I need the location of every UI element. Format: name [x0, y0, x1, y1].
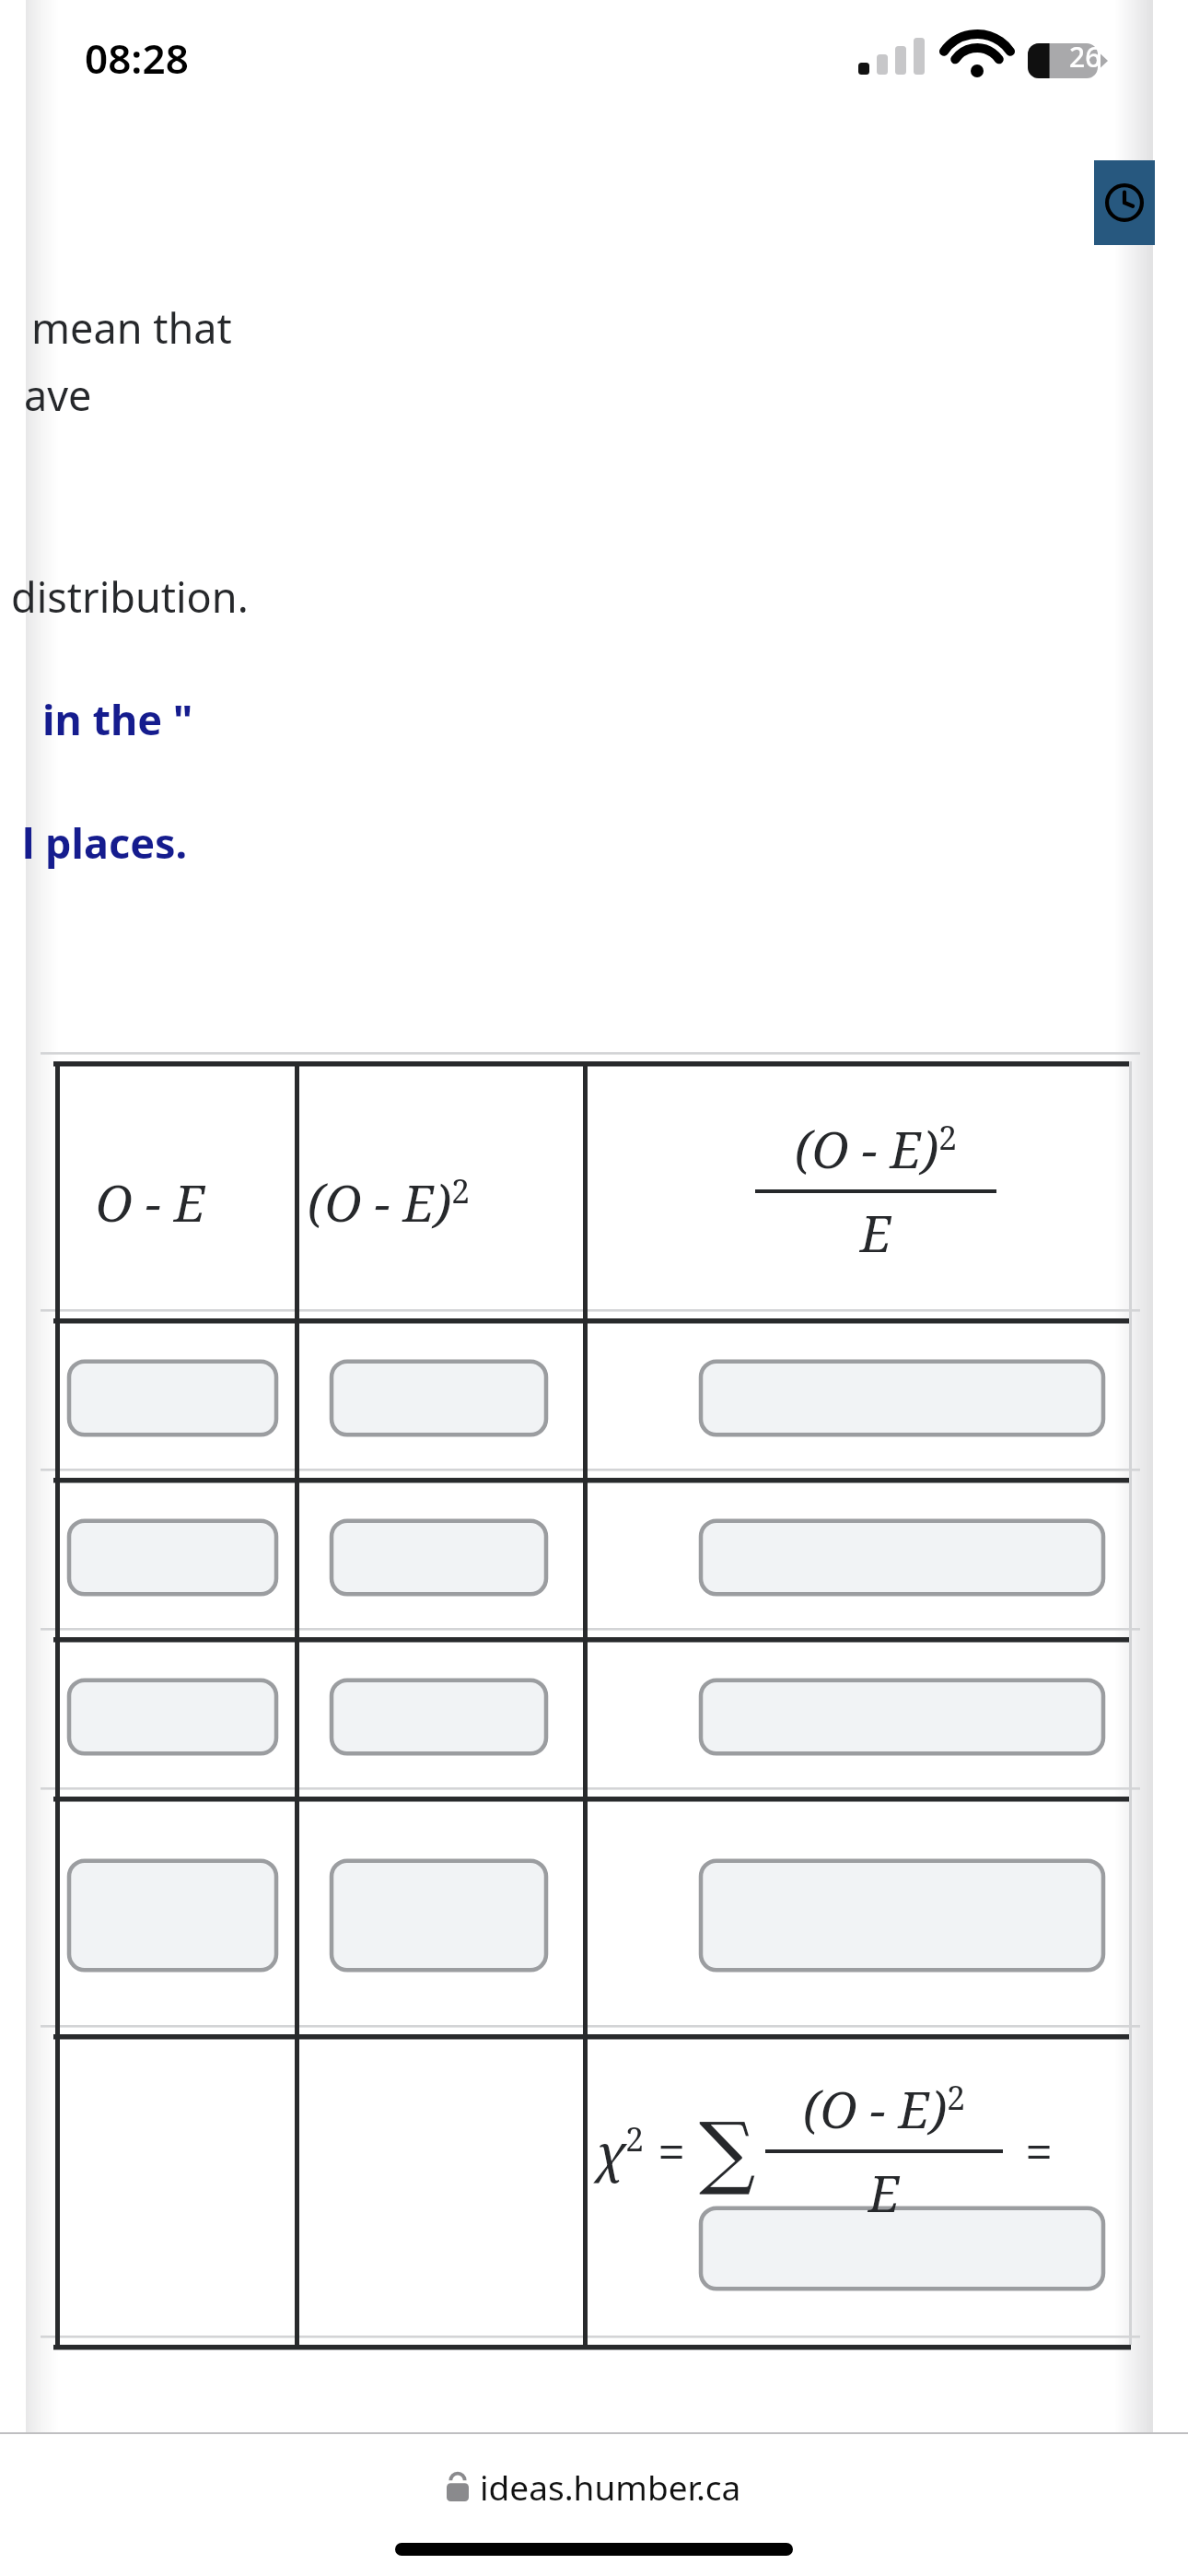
staticText: ideas.humber.ca [480, 2464, 741, 2510]
staticText: E [868, 2159, 900, 2227]
staticText: E [860, 1199, 891, 1267]
staticText: 26 [1069, 38, 1101, 76]
staticText: O − E [96, 1168, 205, 1236]
staticText: χ [597, 2117, 625, 2185]
staticText: = [645, 2117, 699, 2185]
button[interactable]: History [1094, 160, 1155, 245]
staticText: (O − E) [795, 1115, 938, 1183]
staticText: 2 [947, 2075, 966, 2120]
staticText: distribution. [11, 568, 249, 625]
staticText: = [1012, 2117, 1054, 2185]
staticText: ave [24, 367, 92, 423]
staticText: 2 [938, 1115, 958, 1160]
staticText: 08:28 [85, 30, 189, 86]
button[interactable]: ideas.humber.ca [447, 2464, 741, 2510]
staticText: (O − E) [308, 1168, 451, 1236]
staticText: ∑ [699, 2105, 756, 2197]
staticText: (O − E) [803, 2075, 947, 2143]
staticText: 2 [625, 2116, 645, 2161]
staticText: in the " [42, 691, 193, 747]
staticText: mean that [31, 299, 232, 356]
staticText: 2 [451, 1168, 471, 1213]
staticText: l places. [22, 814, 188, 871]
